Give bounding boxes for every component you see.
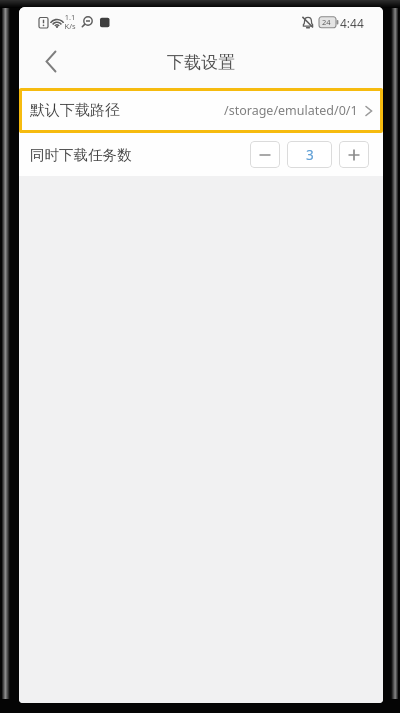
staticText: 24 (322, 17, 331, 27)
staticText: 默认下载路径 (30, 101, 120, 120)
staticText: 同时下载任务数 (30, 146, 132, 164)
button[interactable] (250, 141, 280, 168)
button[interactable]: 3 (287, 141, 332, 168)
button[interactable]: 默认下载路径 (19, 88, 383, 133)
staticText: /storage/emulated/0/1 (224, 102, 358, 119)
staticText: 3 (306, 146, 314, 164)
staticText: 4:44 (340, 15, 364, 31)
button[interactable] (37, 47, 67, 77)
button[interactable] (339, 141, 369, 168)
staticText: 下载设置 (167, 52, 235, 73)
staticText: 1.1 K/s (64, 12, 76, 32)
